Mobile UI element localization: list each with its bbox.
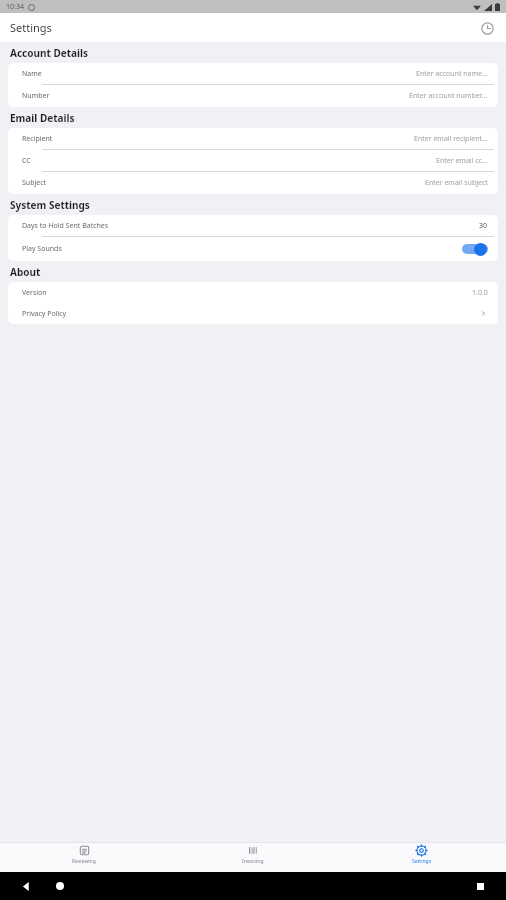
staticText: Subject — [22, 178, 47, 188]
staticText: Settings — [412, 858, 432, 865]
staticText: 30 — [479, 221, 488, 231]
staticText: Enter email subject — [425, 178, 488, 188]
staticText: Enter account name... — [416, 69, 488, 79]
button[interactable]: Reviewing — [0, 842, 168, 872]
button[interactable]: Home — [52, 878, 68, 894]
button[interactable]: Invoicing — [168, 842, 337, 872]
staticText: Days to Hold Sent Batches — [22, 221, 109, 231]
staticText: Privacy Policy — [22, 309, 67, 319]
button[interactable]: Privacy Policy — [8, 303, 498, 324]
button[interactable]: Days to Hold Sent Batches — [8, 215, 498, 237]
button[interactable]: Version — [8, 282, 498, 303]
staticText: Email Details — [10, 111, 75, 125]
button[interactable]: CC — [8, 150, 498, 172]
staticText: Play Sounds — [22, 244, 62, 254]
staticText: Version — [22, 288, 47, 298]
staticText: Name — [22, 69, 42, 79]
staticText: Settings — [10, 20, 52, 35]
staticText: Reviewing — [72, 858, 96, 865]
staticText: Enter email cc... — [436, 156, 488, 166]
staticText: Number — [22, 91, 50, 101]
staticText: Account Details — [10, 46, 89, 60]
staticText: Recipient — [22, 134, 53, 144]
staticText: 10:34 — [6, 2, 24, 12]
staticText: Enter account number... — [409, 91, 488, 101]
button[interactable]: Subject — [8, 172, 498, 194]
button[interactable]: Play Sounds — [8, 237, 498, 261]
button[interactable]: Settings — [337, 842, 506, 872]
staticText: Enter email recipient... — [414, 134, 488, 144]
button[interactable]: History — [476, 17, 498, 39]
staticText: 1.0.0 — [472, 288, 488, 298]
staticText: CC — [22, 156, 31, 166]
button[interactable]: Name — [8, 63, 498, 85]
button[interactable]: Back — [18, 878, 34, 894]
button[interactable]: Recents — [472, 878, 488, 894]
button[interactable]: Number — [8, 85, 498, 107]
button[interactable]: Recipient — [8, 128, 498, 150]
staticText: About — [10, 265, 41, 279]
staticText: Invoicing — [242, 858, 264, 865]
staticText: System Settings — [10, 198, 90, 212]
